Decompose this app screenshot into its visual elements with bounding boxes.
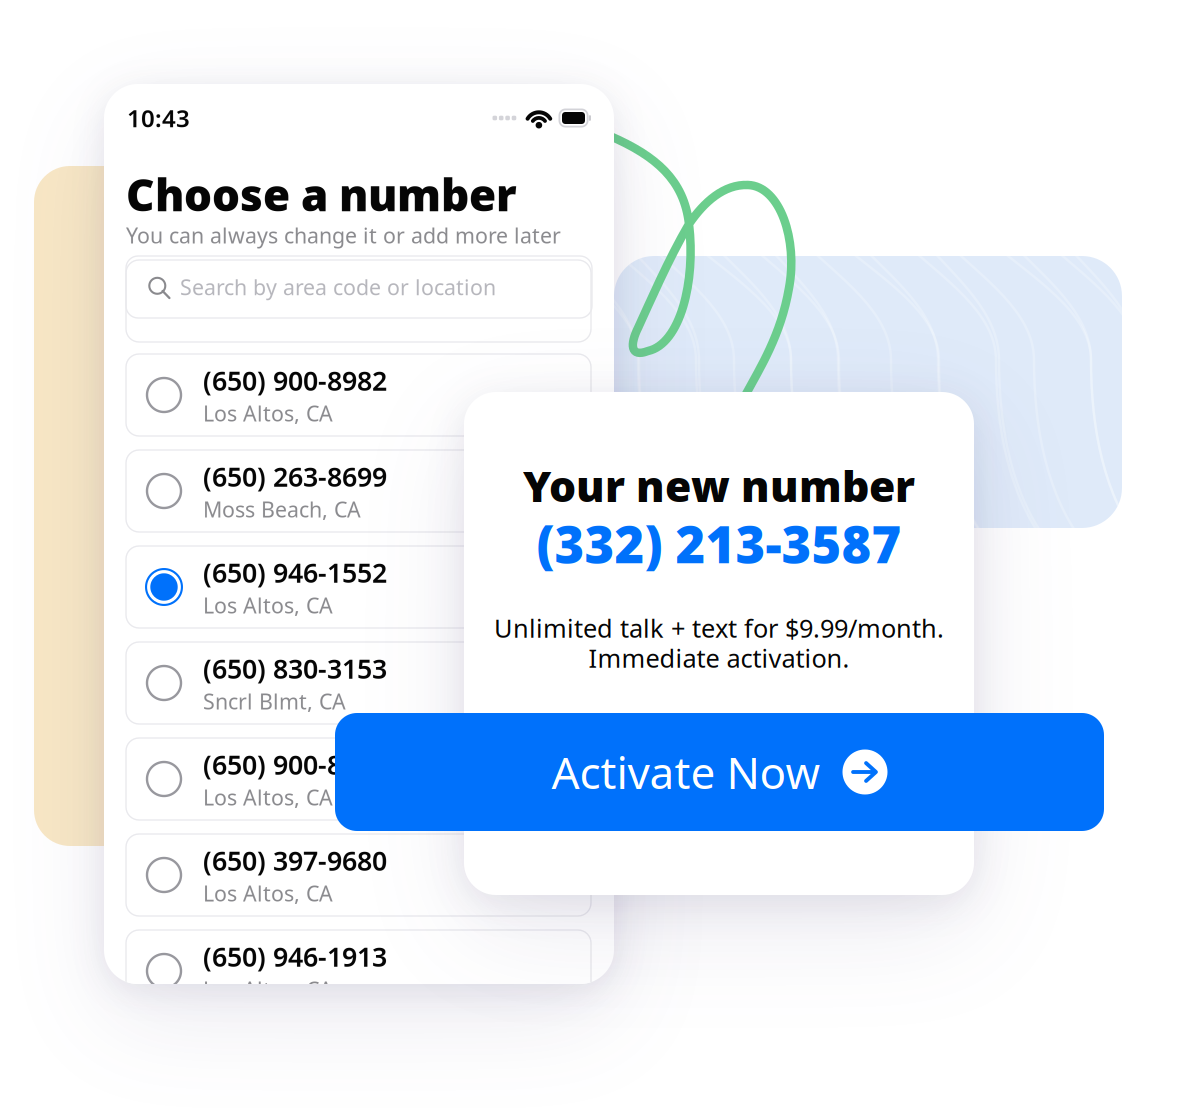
staticText: Sncrl Blmt, CA [203,687,346,715]
staticText: (650) 900-8982 [203,747,387,782]
staticText: Activate Now [551,743,820,801]
button[interactable]: (650) 830-3153 [126,642,591,724]
button[interactable]: (650) 900-8982 [126,738,591,820]
staticText: Choose a number [126,165,517,223]
staticText: (650) 263-8699 [203,459,387,494]
staticText: Los Altos, CA [203,975,333,1003]
staticText: Los Altos, CA [203,399,333,427]
staticText: Moss Beach, CA [203,495,361,523]
staticText: Los Altos, CA [203,591,333,619]
staticText: 10:43 [127,102,190,134]
button[interactable]: Search by area code or location [126,256,592,318]
button[interactable]: (650) 946-1913 [126,930,591,1012]
button[interactable]: (650) 900-8982 [126,354,591,436]
staticText: Los Altos, CA [203,879,333,907]
staticText: (650) 900-8982 [203,363,387,398]
staticText: (650) 830-3153 [203,651,387,686]
staticText: (650) 397-9680 [203,843,387,878]
staticText: (650) 946-1913 [203,939,387,974]
button[interactable]: Activate Now [335,713,1104,831]
staticText: (650) 946-1552 [203,555,387,590]
staticText: Search by area code or location [180,273,496,301]
button[interactable]: (650) 397-9680 [126,834,591,916]
staticText: Immediate activation. [588,641,849,675]
staticText: Your new number [523,457,915,514]
staticText: Los Altos, CA [203,783,333,811]
staticText: (332) 213-3587 [536,510,901,577]
staticText: You can always change it or add more lat… [126,221,561,249]
button[interactable]: (650) 946-1552 [126,546,591,628]
staticText: Unlimited talk + text for $9.99/month. [494,611,944,645]
button[interactable]: (650) 263-8699 [126,450,591,532]
